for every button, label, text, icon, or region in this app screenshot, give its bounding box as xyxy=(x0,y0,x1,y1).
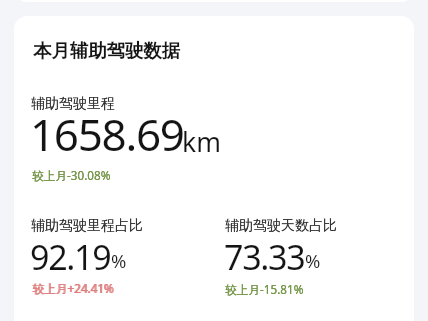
staticText: 辅助驾驶里程 xyxy=(31,95,115,113)
staticText: 较上月-15.81% xyxy=(225,281,304,297)
staticText: 辅助驾驶天数占比 xyxy=(225,217,337,235)
button[interactable]: 本月辅助驾驶数据 xyxy=(33,39,181,62)
staticText: 1658.69 xyxy=(30,104,184,164)
staticText: 92.19 xyxy=(30,234,111,280)
staticText: % xyxy=(305,248,321,273)
staticText: % xyxy=(111,248,127,273)
staticText: 较上月-30.08% xyxy=(32,167,111,183)
button[interactable]: 辅助驾驶里程 xyxy=(31,95,251,200)
staticText: 辅助驾驶里程占比 xyxy=(31,217,143,235)
button[interactable]: 辅助驾驶里程占比 xyxy=(31,217,221,307)
staticText: 辅助驾驶天数占比 xyxy=(225,217,337,235)
staticText: 辅助驾驶里程 xyxy=(31,95,115,113)
staticText: 较上月-15.81% xyxy=(225,281,304,297)
staticText: 较上月+24.41% xyxy=(33,280,115,296)
staticText: 较上月-30.08% xyxy=(32,167,111,183)
staticText: 较上月+24.41% xyxy=(32,280,114,296)
button[interactable]: 辅助驾驶天数占比 xyxy=(225,217,405,307)
staticText: km xyxy=(182,124,221,160)
staticText: 辅助驾驶里程占比 xyxy=(31,217,143,235)
staticText: 73.33 xyxy=(224,234,305,280)
